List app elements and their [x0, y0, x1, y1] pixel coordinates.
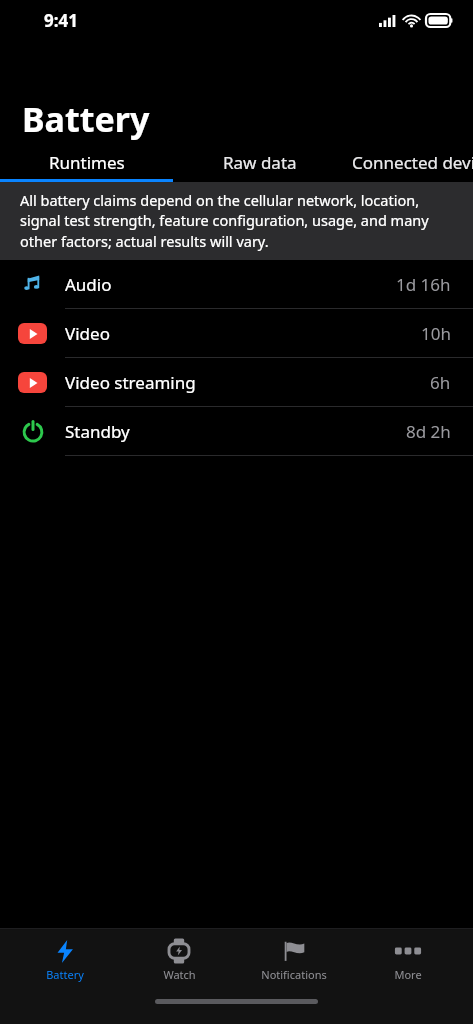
- button[interactable]: Notifications: [244, 938, 344, 982]
- staticText: Standby: [65, 420, 130, 443]
- staticText: Notifications: [261, 967, 327, 982]
- other: Notifications: [282, 940, 306, 962]
- button[interactable]: Runtimes: [0, 142, 173, 182]
- staticText: Video: [65, 322, 110, 345]
- staticText: Video streaming: [65, 371, 196, 394]
- button[interactable]: Standby: [0, 407, 473, 456]
- staticText: Connected devices: [352, 151, 473, 174]
- staticText: All battery claims depend on the cellula…: [20, 190, 455, 252]
- staticText: Raw data: [223, 151, 297, 174]
- staticText: 10h: [421, 322, 451, 345]
- staticText: 8d 2h: [406, 420, 451, 443]
- other: Battery: [54, 940, 76, 963]
- other: Watch: [169, 938, 189, 964]
- button[interactable]: More: [358, 938, 458, 982]
- staticText: 1d 16h: [396, 273, 451, 296]
- button[interactable]: Raw data: [173, 142, 346, 182]
- other: More: [396, 947, 420, 955]
- button[interactable]: Video streaming: [0, 358, 473, 407]
- staticText: 6h: [430, 371, 451, 394]
- button[interactable]: Connected devices: [346, 142, 473, 182]
- staticText: Watch: [163, 967, 196, 982]
- staticText: Audio: [65, 273, 112, 296]
- button[interactable]: Audio: [0, 260, 473, 309]
- staticText: Runtimes: [49, 151, 125, 174]
- staticText: Battery: [22, 96, 150, 142]
- staticText: 9:41: [44, 9, 78, 32]
- staticText: Battery: [46, 967, 84, 982]
- button[interactable]: Battery: [15, 938, 115, 982]
- button[interactable]: Video: [0, 309, 473, 358]
- staticText: More: [394, 967, 422, 982]
- button[interactable]: Watch: [129, 938, 229, 982]
